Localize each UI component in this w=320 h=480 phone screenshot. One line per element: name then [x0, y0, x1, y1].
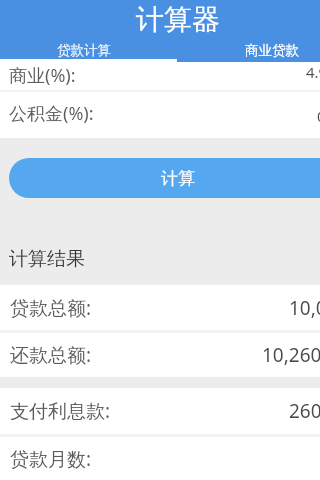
button[interactable]: 公积金(%):: [0, 92, 320, 123]
button[interactable]: 计算: [9, 158, 320, 198]
staticText: 4.9: [306, 62, 320, 82]
staticText: 计算器: [136, 2, 220, 37]
button[interactable]: 贷款计算: [0, 42, 177, 59]
staticText: 贷款计算: [57, 42, 111, 59]
staticText: 还款总额:: [10, 342, 92, 368]
staticText: 公积金(%):: [9, 101, 94, 123]
staticText: 计算: [161, 168, 195, 189]
staticText: 计算结果: [9, 247, 85, 271]
button[interactable]: 商业贷款: [177, 42, 320, 59]
staticText: 贷款总额:: [10, 295, 92, 321]
staticText: 10,260.84: [262, 342, 320, 368]
button[interactable]: 贷款月数:: [0, 437, 320, 480]
button[interactable]: 支付利息款:: [0, 388, 320, 434]
button[interactable]: 贷款总额:: [0, 285, 320, 330]
staticText: 贷款月数:: [10, 446, 92, 472]
staticText: 10,000: [289, 295, 320, 321]
button[interactable]: 还款总额:: [0, 333, 320, 377]
staticText: 0: [317, 106, 320, 123]
staticText: 商业贷款: [245, 42, 299, 59]
button[interactable]: 商业(%):: [0, 62, 320, 90]
staticText: 支付利息款:: [10, 398, 111, 424]
staticText: 260.84: [289, 398, 320, 424]
staticText: 商业(%):: [9, 63, 76, 88]
